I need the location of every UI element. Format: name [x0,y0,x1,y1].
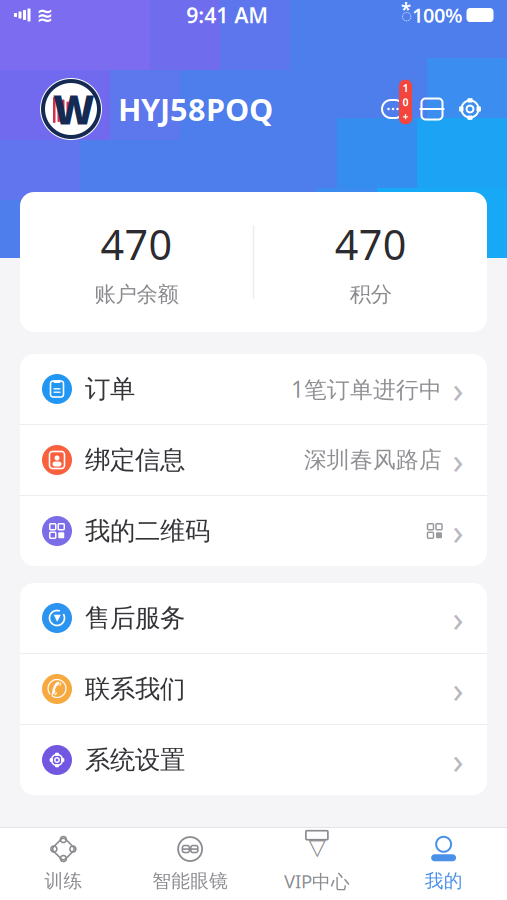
button[interactable]: 470 [20,186,253,338]
staticText: ▼ [53,612,60,623]
staticText: 系统设置 [85,744,185,775]
button[interactable]: Scan [413,89,451,129]
staticText: 我的二维码 [85,515,210,546]
button[interactable]: 训练 [0,828,127,900]
staticText: › [452,436,463,484]
staticText: 我的 [425,869,463,892]
staticText: 订单 [85,373,135,404]
staticText: ⃰ [401,3,412,27]
button[interactable]: 我的二维码 [20,496,487,566]
button[interactable]: 系统设置 [20,725,487,795]
button[interactable]: 我的 [380,828,507,900]
staticText: › [452,507,463,555]
button[interactable]: 绑定信息 [20,425,487,495]
button[interactable]: Messages [373,89,413,129]
staticText: 联系我们 [85,673,185,704]
staticText: 1笔订单进行中 [291,374,442,404]
button[interactable]: 订单 [20,354,487,424]
staticText: 积分 [350,281,392,307]
button[interactable]: ▽ [253,828,380,900]
staticText: HYJ58POQ [118,89,273,129]
staticText: 训练 [44,869,82,892]
button[interactable]: Settings [451,89,489,129]
staticText: VIP中心 [284,869,350,893]
staticText: ▽ [308,834,325,859]
staticText: › [452,665,463,713]
staticText: 100% [412,2,463,28]
staticText: › [452,736,463,784]
staticText: 10+ [402,81,408,123]
staticText: 账户余额 [94,281,178,307]
staticText: ≋ [36,4,53,26]
staticText: 智能眼镜 [152,869,228,892]
button[interactable]: ✆ [20,654,487,724]
button[interactable]: 470 [254,186,487,338]
staticText: 售后服务 [85,602,185,633]
button[interactable]: 智能眼镜 [127,828,254,900]
staticText: ✆ [46,675,67,703]
staticText: › [452,365,463,413]
staticText: 470 [335,216,407,271]
button[interactable]: ▼ [20,583,487,653]
staticText: 深圳春风路店 [304,446,442,474]
staticText: › [452,594,463,642]
staticText: 绑定信息 [85,444,185,475]
staticText: 9:41 AM [186,1,268,29]
button[interactable]: W [40,78,273,140]
staticText: 470 [100,216,172,271]
staticText: W [53,82,95,135]
